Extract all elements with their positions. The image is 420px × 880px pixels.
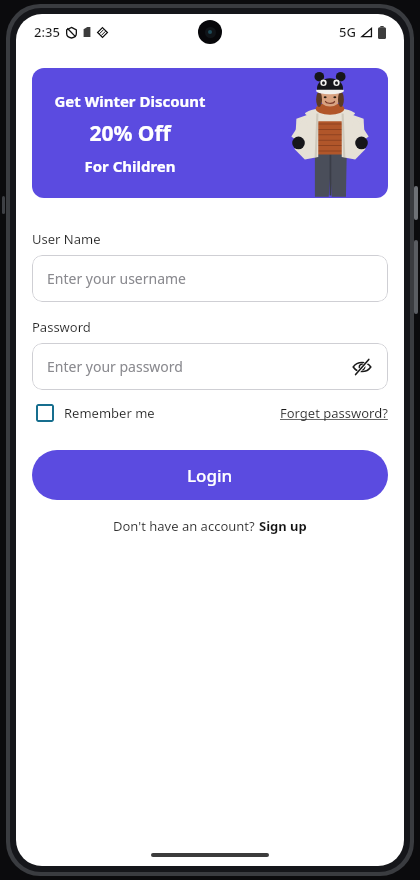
staticText: Enter your username xyxy=(47,269,187,288)
button[interactable]: Get Winter Discount xyxy=(32,68,388,198)
button[interactable]: Enter your username xyxy=(32,255,388,302)
staticText: 2:35 xyxy=(34,23,60,41)
staticText: Get Winter Discount xyxy=(54,91,206,111)
button[interactable]: Forget password? xyxy=(280,404,388,422)
staticText: Login xyxy=(187,464,233,487)
staticText: 20% Off xyxy=(89,119,171,148)
button[interactable]: Sign up xyxy=(259,517,307,535)
button[interactable]: Show password xyxy=(348,353,376,381)
staticText: Forget password? xyxy=(280,404,388,422)
button[interactable]: Enter your password xyxy=(32,343,388,390)
staticText: 5G xyxy=(339,23,356,41)
button[interactable]: Login xyxy=(32,450,388,500)
staticText: Password xyxy=(32,318,91,336)
staticText: Enter your password xyxy=(47,357,183,376)
staticText: Sign up xyxy=(259,517,307,535)
staticText: For Children xyxy=(84,156,176,176)
staticText: Remember me xyxy=(64,404,155,422)
staticText: User Name xyxy=(32,230,101,248)
button[interactable]: Remember me xyxy=(32,404,155,422)
staticText: Don't have an account? xyxy=(113,517,259,535)
